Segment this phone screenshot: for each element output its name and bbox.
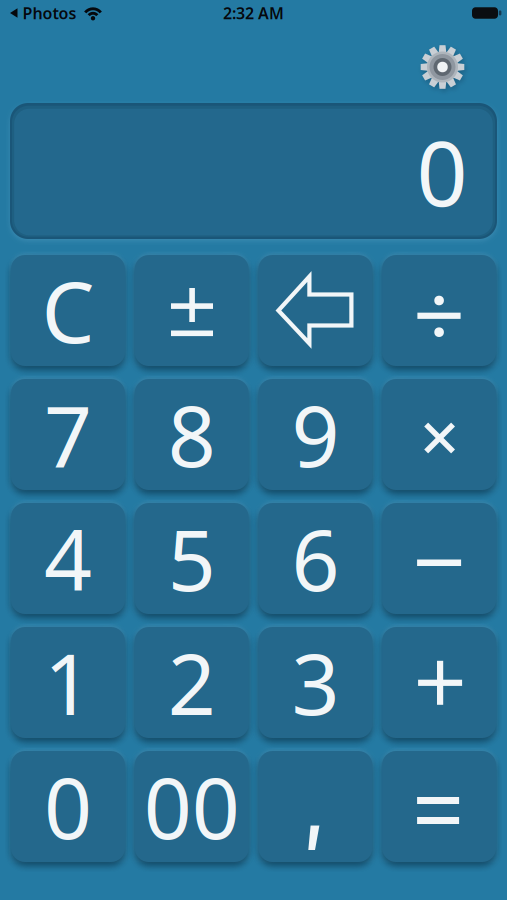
staticText: 0 [44, 751, 92, 862]
button[interactable]: Backspace [258, 255, 372, 366]
staticText: 00 [144, 751, 240, 862]
staticText: C [41, 255, 94, 366]
button[interactable]: Decimal separator [258, 751, 372, 862]
staticText: 3 [291, 627, 339, 738]
staticText: 9 [291, 379, 339, 490]
button[interactable]: Plus Minus [135, 255, 249, 366]
button[interactable]: 5 [135, 503, 249, 614]
button[interactable]: 2 [135, 627, 249, 738]
button[interactable]: C [11, 255, 125, 366]
staticText: 5 [168, 503, 216, 614]
button[interactable]: Multiply [382, 379, 496, 490]
button[interactable]: 9 [258, 379, 372, 490]
button[interactable]: 0 [11, 751, 125, 862]
staticText: Photos [22, 2, 76, 24]
staticText: 2 [168, 627, 216, 738]
button[interactable]: 3 [258, 627, 372, 738]
button[interactable]: Divide [382, 255, 496, 366]
staticText: 4 [44, 503, 92, 614]
button[interactable]: 4 [11, 503, 125, 614]
button[interactable]: 00 [135, 751, 249, 862]
button[interactable]: Add [382, 627, 496, 738]
button[interactable]: Back to Photos [0, 0, 104, 26]
staticText: 7 [44, 379, 92, 490]
button[interactable]: 1 [11, 627, 125, 738]
staticText: 8 [168, 379, 216, 490]
staticText: 1 [44, 627, 92, 738]
button[interactable]: 6 [258, 503, 372, 614]
staticText: 2:32 AM [223, 2, 284, 24]
button[interactable]: Subtract [382, 503, 496, 614]
staticText: 0 [416, 112, 467, 231]
staticText: 6 [291, 503, 339, 614]
button[interactable]: 7 [11, 379, 125, 490]
button[interactable]: Settings [420, 45, 465, 89]
button[interactable]: Equals [382, 751, 496, 862]
button[interactable]: 8 [135, 379, 249, 490]
